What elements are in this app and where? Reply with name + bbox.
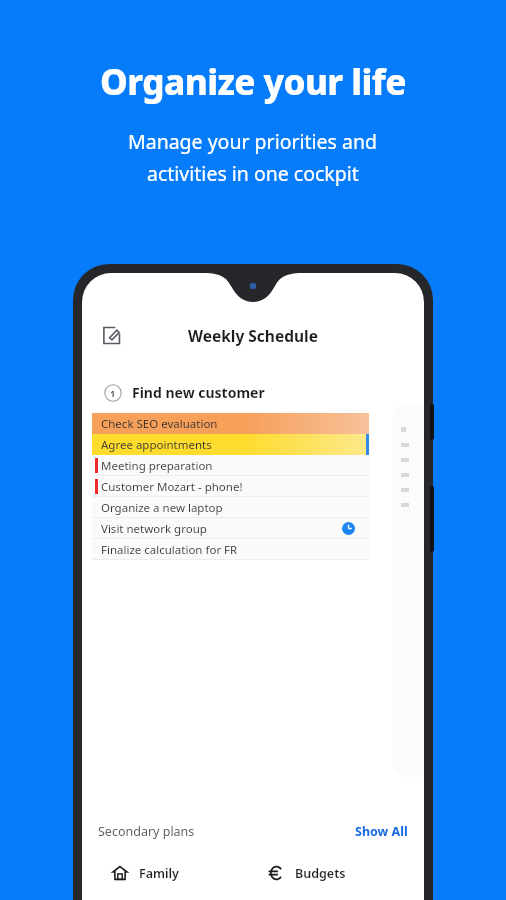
button[interactable] <box>392 405 424 777</box>
button[interactable]: 1 <box>92 371 369 801</box>
button[interactable]: Agree appointments <box>92 434 369 455</box>
staticText: Organize a new laptop <box>101 500 223 516</box>
staticText: Finalize calculation for FR <box>101 542 238 558</box>
staticText: 1 <box>110 387 116 400</box>
staticText: Family <box>139 865 179 882</box>
button[interactable]: Show All <box>355 823 408 840</box>
button[interactable]: Family <box>98 853 240 893</box>
staticText: Show All <box>355 823 408 840</box>
button[interactable]: Visit network group <box>92 518 369 539</box>
staticText: Secondary plans <box>98 823 195 840</box>
staticText: Find new customer <box>132 383 265 402</box>
staticText: Manage your priorities and <box>128 128 378 155</box>
button[interactable]: Edit <box>96 320 126 350</box>
button[interactable]: Organize a new laptop <box>92 497 369 518</box>
staticText: Meeting preparation <box>101 458 213 474</box>
button[interactable]: Finalize calculation for FR <box>92 539 369 560</box>
button[interactable]: Check SEO evaluation <box>92 413 369 434</box>
staticText: Weekly Schedule <box>188 325 318 346</box>
staticText: activities in one cockpit <box>147 160 359 187</box>
staticText: Agree appointments <box>101 437 212 453</box>
button[interactable]: Meeting preparation <box>92 455 369 476</box>
staticText: Customer Mozart - phone! <box>101 479 243 495</box>
staticText: Visit network group <box>101 521 207 537</box>
staticText: Check SEO evaluation <box>101 416 218 432</box>
button[interactable]: Budgets <box>254 853 396 893</box>
staticText: Organize your life <box>100 58 406 106</box>
button[interactable]: Customer Mozart - phone! <box>92 476 369 497</box>
staticText: Budgets <box>295 865 346 882</box>
